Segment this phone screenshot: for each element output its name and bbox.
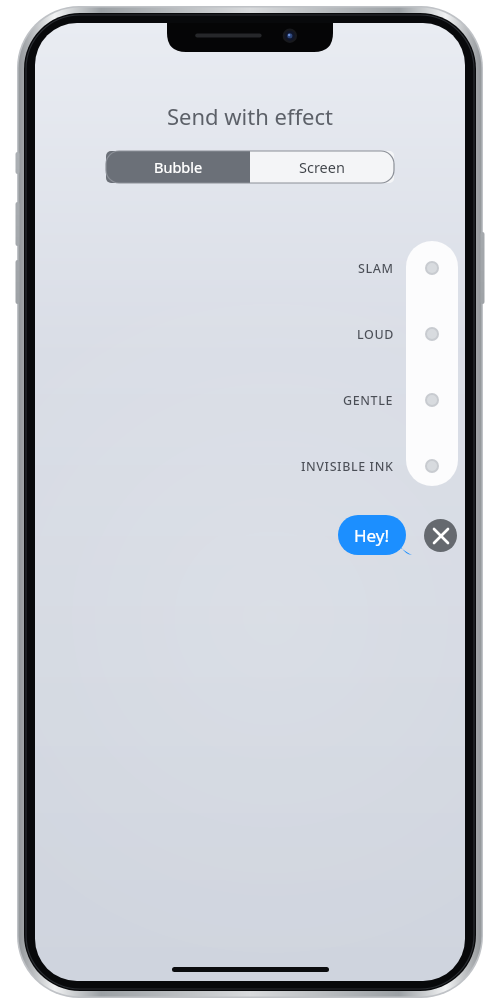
staticText: INVISIBLE INK	[301, 458, 394, 475]
button[interactable]: Close	[424, 519, 457, 552]
staticText: GENTLE	[343, 392, 394, 409]
staticText: SLAM	[358, 260, 394, 277]
staticText: Hey!	[354, 524, 390, 547]
button[interactable]: Bubble	[106, 151, 250, 183]
staticText: Send with effect	[35, 101, 465, 131]
button[interactable]: GENTLE	[35, 387, 465, 413]
button[interactable]: INVISIBLE INK	[35, 453, 465, 479]
button[interactable]: SLAM	[35, 255, 465, 281]
button[interactable]: Hey!	[338, 515, 412, 555]
staticText: LOUD	[357, 326, 394, 343]
button[interactable]: LOUD	[35, 321, 465, 347]
staticText: Bubble	[154, 157, 203, 177]
staticText: Screen	[299, 157, 345, 177]
button[interactable]: Screen	[250, 151, 394, 183]
